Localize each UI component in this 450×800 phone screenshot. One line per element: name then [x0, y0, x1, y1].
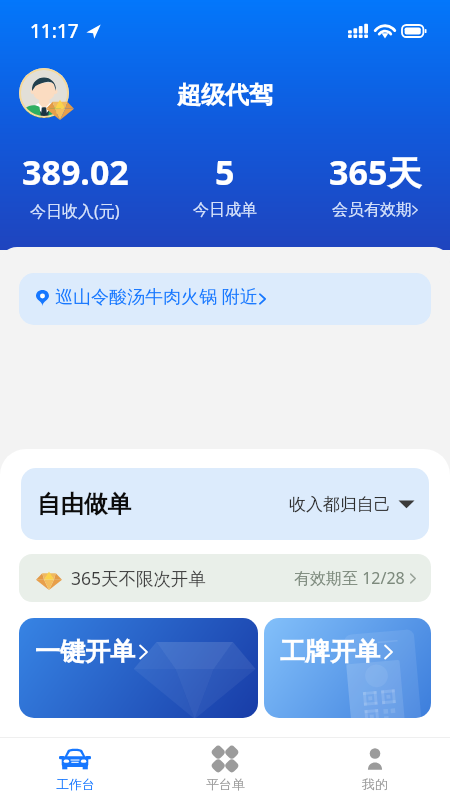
button[interactable]: 工作台: [0, 738, 150, 800]
staticText: 我的: [362, 776, 388, 792]
staticText: 工牌开单: [280, 636, 380, 667]
staticText: 工作台: [56, 776, 95, 792]
button[interactable]: Profile: [19, 68, 76, 120]
button[interactable]: 平台单: [150, 738, 300, 800]
staticText: 自由做单: [37, 489, 131, 519]
staticText: 11:17: [30, 18, 79, 44]
staticText: 365天不限次开单: [71, 566, 207, 590]
staticText: 365天: [329, 149, 422, 195]
button[interactable]: 工牌开单: [264, 618, 431, 718]
staticText: 会员有效期: [332, 200, 412, 220]
staticText: 收入都归自己: [289, 494, 391, 515]
staticText: 巡山令酸汤牛肉火锅 附近: [55, 284, 258, 309]
button[interactable]: 我的: [300, 738, 450, 800]
staticText: 平台单: [206, 776, 245, 792]
button[interactable]: 巡山令酸汤牛肉火锅 附近: [19, 273, 431, 325]
button[interactable]: 自由做单: [21, 468, 429, 540]
staticText: 一键开单: [35, 636, 135, 667]
staticText: 389.02: [22, 149, 129, 195]
staticText: 今日成单: [193, 200, 257, 220]
staticText: 有效期至 12/28: [294, 567, 405, 589]
button[interactable]: 365天不限次开单: [19, 554, 431, 602]
button[interactable]: 365天: [300, 149, 450, 220]
staticText: 今日收入(元): [30, 200, 120, 222]
staticText: 5: [215, 149, 235, 195]
staticText: 超级代驾: [177, 80, 273, 110]
button[interactable]: 一键开单: [19, 618, 258, 718]
